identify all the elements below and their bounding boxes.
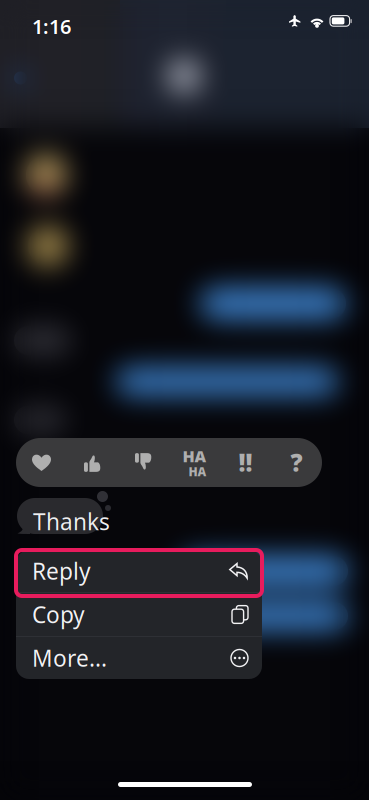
- button[interactable]: Dislike: [118, 438, 169, 487]
- staticText: Thanks: [33, 506, 110, 537]
- staticText: ?: [290, 447, 302, 478]
- button[interactable]: Haha: [169, 438, 220, 487]
- button[interactable]: Love: [16, 438, 67, 487]
- button[interactable]: Copy: [16, 593, 262, 636]
- button[interactable]: Exclamation: [220, 438, 271, 487]
- staticText: Reply: [32, 556, 91, 586]
- staticText: !!: [238, 447, 252, 478]
- staticText: More...: [32, 643, 107, 673]
- button[interactable]: Like: [67, 438, 118, 487]
- button[interactable]: Question: [271, 438, 322, 487]
- button[interactable]: Reply: [16, 549, 262, 592]
- staticText: 1:16: [32, 13, 71, 40]
- staticText: HA: [188, 464, 206, 480]
- button[interactable]: More...: [16, 636, 262, 679]
- staticText: HA: [182, 445, 206, 467]
- staticText: Copy: [32, 599, 85, 629]
